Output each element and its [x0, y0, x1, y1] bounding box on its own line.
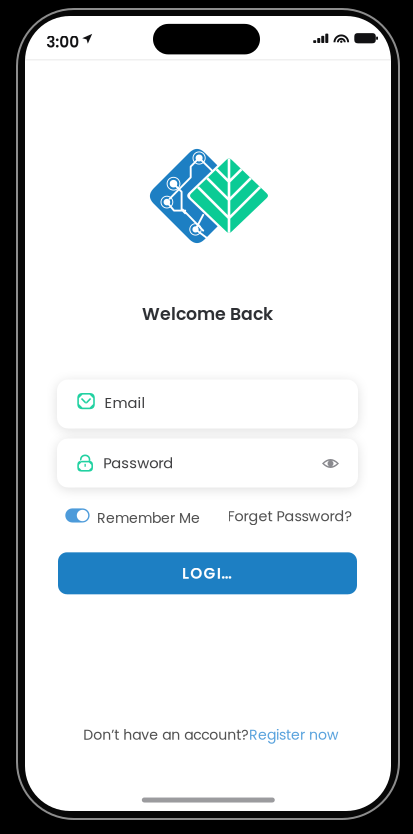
staticText: Welcome Back — [142, 302, 273, 326]
staticText: Password — [103, 453, 173, 473]
button[interactable]: Register now — [249, 725, 338, 745]
staticText: Email — [104, 393, 145, 413]
staticText: Forget Password? — [228, 506, 352, 526]
button[interactable]: LOGIN — [58, 552, 357, 594]
button[interactable]: Remember Me — [65, 504, 195, 524]
button[interactable]: Forget Password? — [222, 506, 352, 526]
button[interactable]: Show password — [313, 449, 348, 478]
staticText: Don’t have an account? — [83, 725, 248, 745]
staticText: Remember Me — [97, 508, 200, 528]
staticText: 3:00 — [46, 31, 79, 53]
staticText: LOGIN — [182, 563, 233, 584]
staticText: Register now — [249, 725, 338, 745]
